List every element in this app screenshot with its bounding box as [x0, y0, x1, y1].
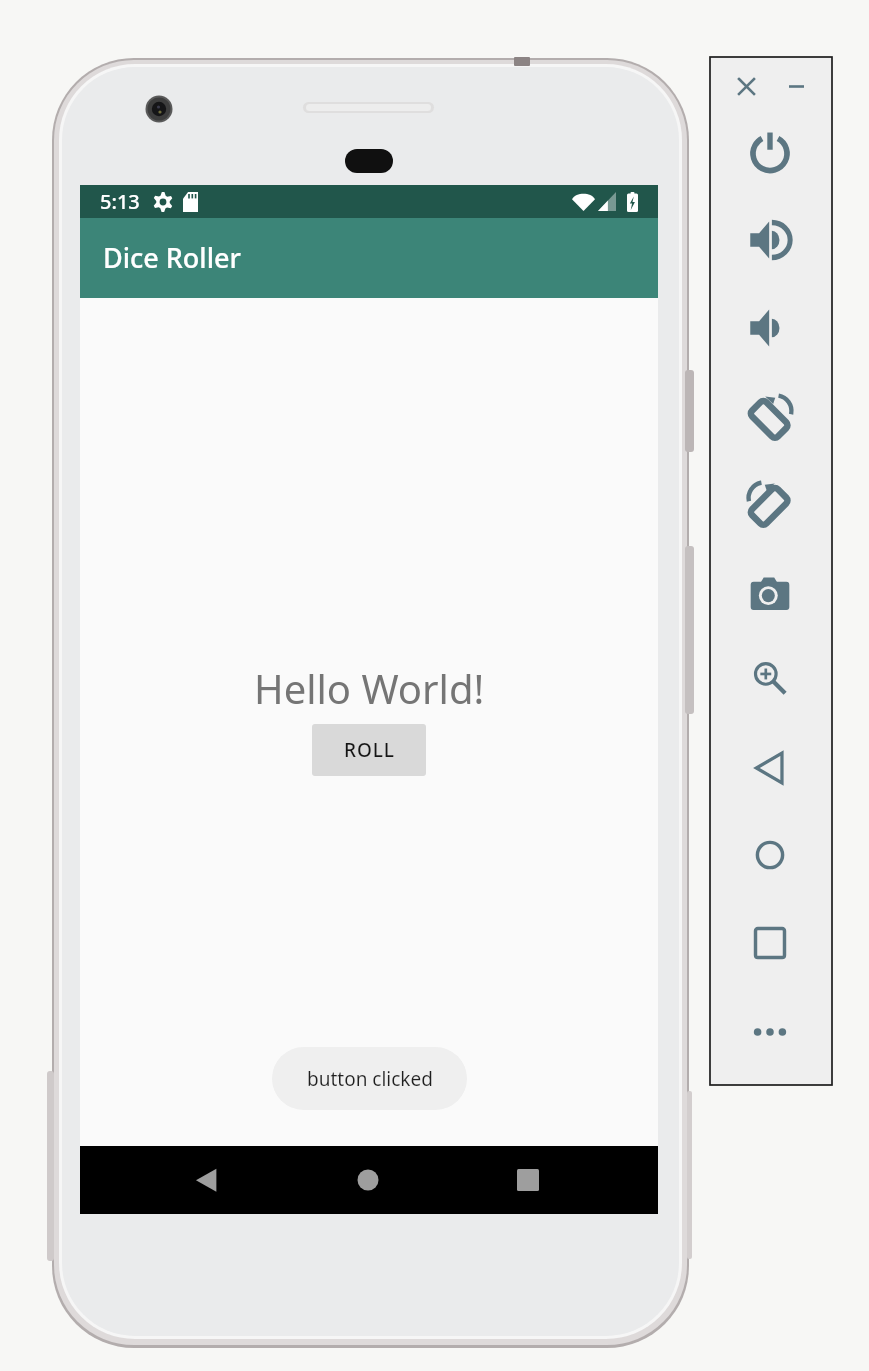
button[interactable]: Close: [726, 66, 766, 106]
staticText: button clicked: [307, 1066, 433, 1092]
button[interactable]: Home: [344, 1156, 392, 1204]
button[interactable]: Minimize: [776, 66, 816, 106]
button[interactable]: Back: [183, 1156, 231, 1204]
button[interactable]: Back: [740, 738, 800, 798]
button[interactable]: Recent apps: [504, 1156, 552, 1204]
button[interactable]: More: [740, 1002, 800, 1062]
staticText: ROLL: [344, 737, 395, 763]
button[interactable]: Volume down: [740, 298, 800, 358]
button[interactable]: Home: [740, 825, 800, 885]
button[interactable]: Overview: [740, 913, 800, 973]
staticText: Dice Roller: [103, 239, 241, 276]
button[interactable]: Power: [740, 121, 800, 181]
button[interactable]: Take screenshot: [740, 561, 800, 621]
button[interactable]: Zoom: [740, 649, 800, 709]
staticText: Hello World!: [254, 661, 485, 715]
button[interactable]: Rotate left: [740, 386, 800, 446]
button[interactable]: Volume up: [740, 210, 800, 270]
staticText: 5:13: [100, 188, 140, 215]
button[interactable]: Rotate right: [740, 473, 800, 533]
button[interactable]: ROLL: [312, 724, 426, 776]
